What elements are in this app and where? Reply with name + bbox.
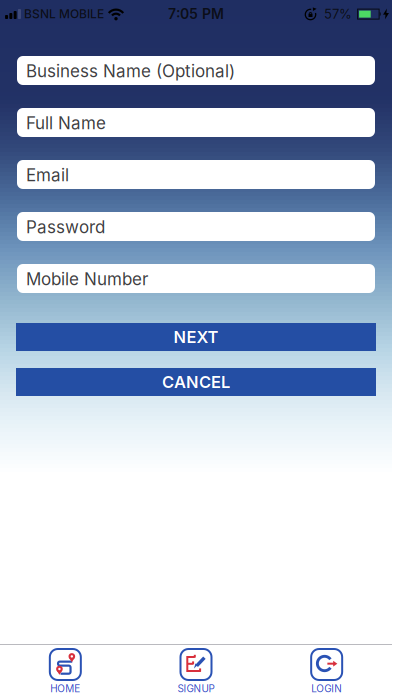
staticText: Password: [26, 217, 105, 237]
button[interactable]: LOGIN: [261, 649, 392, 694]
staticText: Full Name: [26, 113, 106, 133]
staticText: 57%: [324, 6, 352, 22]
button[interactable]: NEXT: [16, 323, 376, 351]
button[interactable]: HOME: [0, 649, 131, 694]
button[interactable]: Password: [17, 212, 375, 241]
button[interactable]: CANCEL: [16, 368, 376, 396]
staticText: SIGNUP: [177, 682, 214, 695]
staticText: 7:05 PM: [168, 5, 224, 22]
button[interactable]: Business Name (Optional): [17, 56, 375, 85]
staticText: Email: [26, 165, 69, 185]
staticText: HOME: [50, 682, 80, 695]
button[interactable]: Full Name: [17, 108, 375, 137]
staticText: NEXT: [173, 327, 218, 347]
button[interactable]: SIGNUP: [131, 649, 261, 694]
staticText: Mobile Number: [26, 269, 148, 289]
staticText: BSNL MOBILE: [24, 7, 104, 21]
button[interactable]: Email: [17, 160, 375, 189]
staticText: LOGIN: [311, 682, 342, 695]
staticText: CANCEL: [162, 372, 230, 392]
staticText: Business Name (Optional): [26, 61, 235, 81]
button[interactable]: Mobile Number: [17, 264, 375, 293]
